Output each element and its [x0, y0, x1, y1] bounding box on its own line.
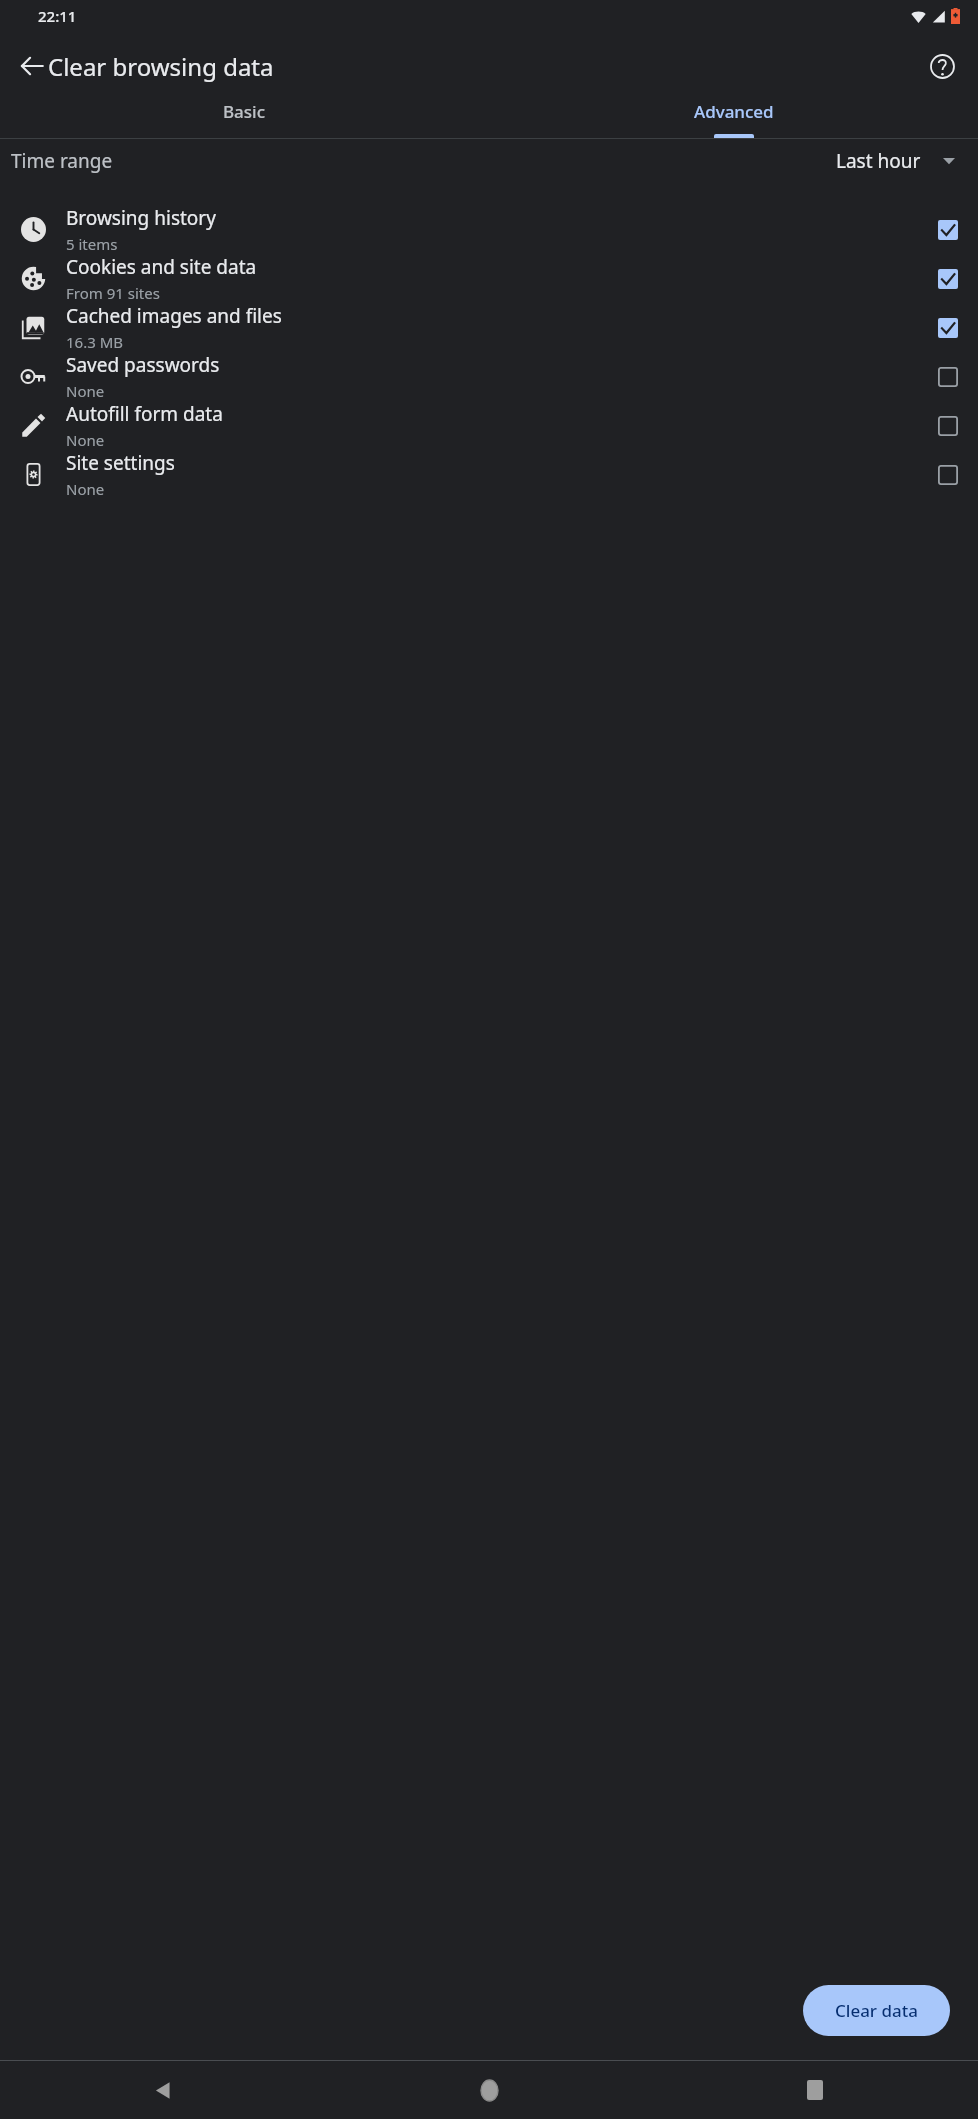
- button[interactable]: Checked: [918, 205, 978, 254]
- staticText: Clear browsing data: [48, 50, 274, 83]
- staticText: Saved passwords: [66, 352, 220, 378]
- button[interactable]: Unchecked: [918, 450, 978, 499]
- staticText: Cached images and files: [66, 303, 282, 329]
- staticText: 22:11: [38, 6, 77, 26]
- staticText: From 91 sites: [66, 283, 160, 303]
- button[interactable]: Back: [8, 42, 56, 90]
- staticText: Clear data: [835, 1999, 918, 2022]
- button[interactable]: Autofill form data: [0, 401, 978, 450]
- staticText: Last hour: [836, 148, 921, 174]
- staticText: None: [66, 479, 105, 499]
- button[interactable]: Help: [918, 42, 966, 90]
- button[interactable]: Cookies and site data: [0, 254, 978, 303]
- button[interactable]: Checked: [918, 254, 978, 303]
- staticText: Autofill form data: [66, 401, 223, 427]
- staticText: None: [66, 381, 105, 401]
- staticText: None: [66, 430, 105, 450]
- button[interactable]: Clear data: [803, 1985, 950, 2036]
- button[interactable]: Cached images and files: [0, 303, 978, 352]
- button[interactable]: Home: [326, 2061, 652, 2119]
- staticText: Site settings: [66, 450, 175, 476]
- button[interactable]: Basic: [0, 100, 489, 138]
- staticText: Basic: [223, 100, 266, 123]
- button[interactable]: Advanced: [489, 100, 978, 138]
- staticText: 5 items: [66, 234, 118, 254]
- staticText: Advanced: [694, 100, 774, 123]
- button[interactable]: Back: [0, 2061, 326, 2119]
- button[interactable]: Time range: [0, 139, 978, 183]
- staticText: 16.3 MB: [66, 332, 124, 352]
- staticText: Time range: [11, 148, 113, 174]
- staticText: Cookies and site data: [66, 254, 257, 280]
- button[interactable]: Unchecked: [918, 401, 978, 450]
- staticText: Browsing history: [66, 205, 216, 231]
- button[interactable]: Unchecked: [918, 352, 978, 401]
- button[interactable]: Site settings: [0, 450, 978, 499]
- button[interactable]: Browsing history: [0, 205, 978, 254]
- button[interactable]: Checked: [918, 303, 978, 352]
- button[interactable]: Recent apps: [652, 2061, 978, 2119]
- button[interactable]: Saved passwords: [0, 352, 978, 401]
